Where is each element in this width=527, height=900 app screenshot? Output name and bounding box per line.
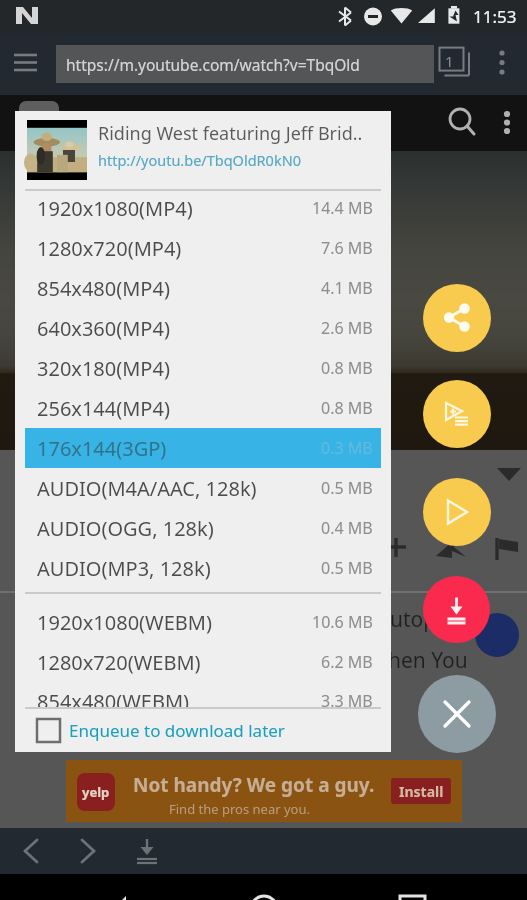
staticText: 320x180(MP4): [37, 355, 170, 382]
button[interactable]: Play: [423, 478, 491, 546]
staticText: 0.5 MB: [321, 557, 373, 579]
staticText: 1920x1080(WEBM): [37, 609, 212, 636]
button[interactable]: Menu: [0, 40, 48, 88]
button[interactable]: AUDIO(M4A/AAC, 128k): [25, 468, 381, 508]
button[interactable]: 854x480(MP4): [25, 268, 381, 308]
staticText: Riding West featuring Jeff Brid..: [98, 121, 363, 146]
button[interactable]: AUDIO(OGG, 128k): [25, 508, 381, 548]
staticText: 0.4 MB: [321, 517, 373, 539]
staticText: 7.6 MB: [321, 237, 373, 259]
button[interactable]: Install: [391, 778, 451, 804]
staticText: 1280x720(WEBM): [37, 649, 201, 676]
staticText: 14.4 MB: [312, 197, 373, 219]
staticText: utop: [390, 605, 437, 634]
staticText: AUDIO(M4A/AAC, 128k): [37, 475, 257, 502]
staticText: 0.5 MB: [321, 477, 373, 499]
button[interactable]: 1920x1080(WEBM): [25, 602, 381, 642]
staticText: 1: [445, 51, 454, 71]
button[interactable]: More options: [479, 40, 527, 88]
button[interactable]: 854x480(WEBM): [25, 688, 381, 707]
button[interactable]: 1280x720(WEBM): [25, 642, 381, 682]
button[interactable]: Add to playlist: [423, 380, 491, 448]
button[interactable]: Close: [418, 675, 496, 753]
staticText: AUDIO(OGG, 128k): [37, 515, 214, 542]
staticText: 11:53: [473, 5, 517, 28]
staticText: Install: [399, 782, 444, 801]
button[interactable]: 320x180(MP4): [25, 348, 381, 388]
button[interactable]: AUDIO(MP3, 128k): [25, 548, 381, 588]
button[interactable]: Back: [8, 829, 52, 873]
button[interactable]: 1920x1080(MP4): [25, 188, 381, 228]
button[interactable]: 256x144(MP4): [25, 388, 381, 428]
button[interactable]: Downloads: [127, 829, 171, 873]
staticText: Not handy? We got a guy.: [133, 772, 375, 798]
button[interactable]: Forward: [67, 829, 111, 873]
staticText: 176x144(3GP): [37, 435, 167, 462]
staticText: 854x480(MP4): [37, 275, 170, 302]
staticText: https://m.youtube.com/watch?v=TbqOld: [66, 54, 360, 75]
staticText: 2.6 MB: [321, 317, 373, 339]
staticText: 640x360(MP4): [37, 315, 170, 342]
staticText: 3.3 MB: [321, 690, 373, 707]
staticText: 256x144(MP4): [37, 395, 170, 422]
staticText: Find the pros near you.: [169, 800, 310, 818]
button[interactable]: https://m.youtube.com/watch?v=TbqOld: [56, 45, 434, 83]
staticText: 10.6 MB: [312, 611, 373, 633]
staticText: 0.8 MB: [321, 357, 373, 379]
button[interactable]: Share: [423, 284, 491, 352]
staticText: 6.2 MB: [321, 651, 373, 673]
staticText: 0.3 MB: [321, 437, 373, 459]
staticText: 1280x720(MP4): [37, 235, 182, 262]
staticText: AUDIO(MP3, 128k): [37, 555, 211, 582]
button[interactable]: 176x144(3GP): [25, 428, 381, 468]
button[interactable]: Download: [423, 576, 490, 643]
button[interactable]: yelp: [66, 760, 462, 822]
staticText: Enqueue to download later: [69, 719, 285, 742]
button[interactable]: Tabs: [428, 41, 476, 89]
button[interactable]: 640x360(MP4): [25, 308, 381, 348]
staticText: 854x480(WEBM): [37, 688, 190, 707]
staticText: hen You: [388, 646, 468, 675]
button[interactable]: 1280x720(MP4): [25, 228, 381, 268]
staticText: 1920x1080(MP4): [37, 195, 193, 222]
staticText: yelp: [82, 783, 110, 801]
staticText: http://youtu.be/TbqOldR0kN0: [98, 150, 301, 170]
staticText: 0.8 MB: [321, 397, 373, 419]
button[interactable]: Enqueue to download later: [37, 709, 391, 751]
staticText: 4.1 MB: [321, 277, 373, 299]
